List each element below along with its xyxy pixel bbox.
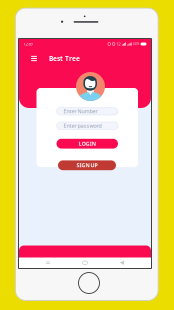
staticText: Best Tree [49, 54, 80, 63]
staticText: Enter Number [63, 108, 97, 115]
button[interactable]: LOGIN [56, 139, 118, 149]
button[interactable]: Home [77, 258, 93, 268]
button[interactable]: Menu [29, 55, 39, 62]
staticText: LOGIN [79, 140, 96, 147]
button[interactable]: Recents [40, 258, 56, 268]
button[interactable]: Enter Number [56, 108, 118, 115]
staticText: SIGN UP [76, 162, 97, 169]
button[interactable]: Back [114, 258, 130, 268]
staticText: 44% [133, 42, 139, 46]
staticText: 12 [116, 41, 120, 47]
staticText: Enter password [63, 122, 101, 129]
staticText: 12:49 [23, 41, 32, 47]
button[interactable]: Enter password [56, 122, 118, 129]
button[interactable]: SIGN UP [58, 160, 116, 170]
